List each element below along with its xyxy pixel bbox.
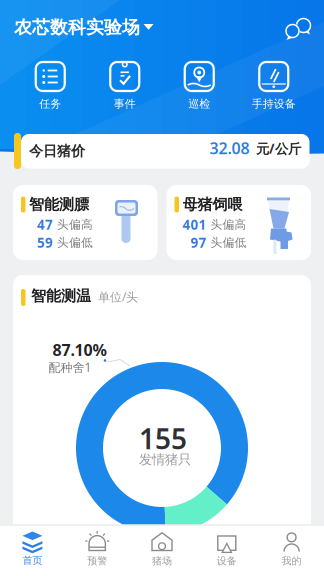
staticText: 头偏高	[57, 217, 93, 232]
staticText: 97	[190, 233, 206, 252]
staticText: 预警	[87, 554, 107, 567]
button[interactable]: 手持设备	[236, 62, 311, 111]
button[interactable]: 智能测膘	[13, 185, 157, 260]
staticText: 智能测膘	[29, 195, 89, 214]
staticText: 元/公斤	[256, 139, 301, 157]
button[interactable]: 我的	[259, 531, 324, 567]
button[interactable]: 今日猪价	[14, 133, 309, 169]
staticText: 155	[139, 419, 187, 457]
button[interactable]: 巡检	[162, 62, 236, 111]
staticText: 母猪饲喂	[182, 195, 242, 214]
staticText: 头偏高	[210, 217, 246, 232]
staticText: 头偏低	[57, 235, 93, 250]
button[interactable]: 母猪饲喂	[166, 185, 311, 260]
button[interactable]: 设备	[194, 531, 259, 567]
staticText: 事件	[114, 97, 136, 111]
staticText: 巡检	[188, 97, 210, 111]
button[interactable]: 猪场	[130, 531, 194, 567]
staticText: 59	[37, 233, 53, 252]
staticText: 猪场	[152, 554, 172, 567]
staticText: 头偏低	[210, 235, 246, 250]
staticText: 设备	[217, 554, 237, 567]
staticText: 发情猪只	[139, 451, 191, 468]
button[interactable]: 任务	[13, 62, 87, 111]
staticText: 首页	[22, 554, 42, 567]
staticText: 农芯数科实验场	[14, 16, 140, 38]
staticText: 智能测温	[31, 286, 91, 305]
staticText: 87.10%	[52, 339, 106, 361]
staticText: 单位/头	[98, 288, 138, 305]
button[interactable]: 预警	[65, 531, 130, 567]
staticText: 手持设备	[252, 97, 296, 111]
staticText: 47	[37, 215, 53, 234]
button[interactable]: 事件	[87, 62, 162, 111]
staticText: 今日猪价	[29, 142, 85, 160]
button[interactable]: 首页	[0, 531, 65, 567]
staticText: 401	[182, 215, 206, 234]
staticText: 32.08	[209, 137, 249, 159]
staticText: 配种舍1	[48, 359, 91, 375]
button[interactable]: 消息	[283, 15, 314, 42]
button[interactable]: 切换猪场	[143, 24, 153, 30]
staticText: 任务	[39, 97, 61, 111]
staticText: 我的	[282, 554, 302, 567]
